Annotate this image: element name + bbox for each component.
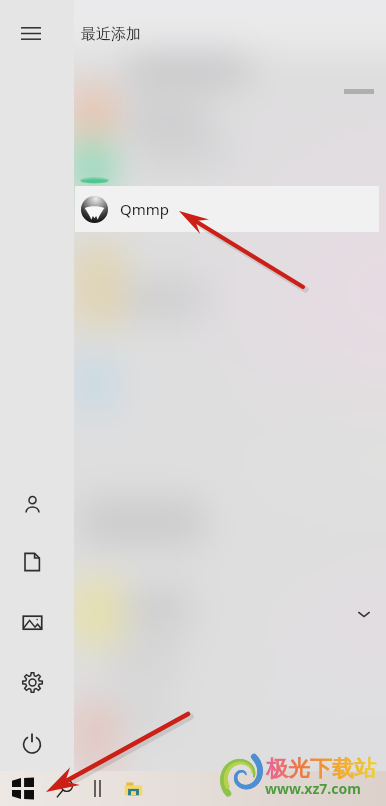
button[interactable]: Settings [12, 662, 52, 702]
staticText: Qmmp [120, 199, 169, 219]
button[interactable]: File Explorer [113, 771, 153, 806]
staticText: 最近添加 [81, 25, 141, 44]
staticText: 极光下载站 [266, 755, 376, 783]
button[interactable]: Search [44, 771, 84, 806]
button[interactable]: Qmmp [75, 186, 379, 232]
button[interactable]: Documents [12, 542, 52, 582]
button[interactable]: Start [2, 771, 44, 806]
button[interactable]: Pictures [12, 602, 52, 642]
button[interactable]: Menu [11, 13, 51, 53]
button[interactable]: Power [12, 723, 52, 763]
button[interactable]: Task view [82, 771, 112, 806]
button[interactable]: Expand [352, 602, 376, 626]
staticText: www.xz7.com [265, 779, 361, 798]
button[interactable]: Account [12, 484, 52, 524]
